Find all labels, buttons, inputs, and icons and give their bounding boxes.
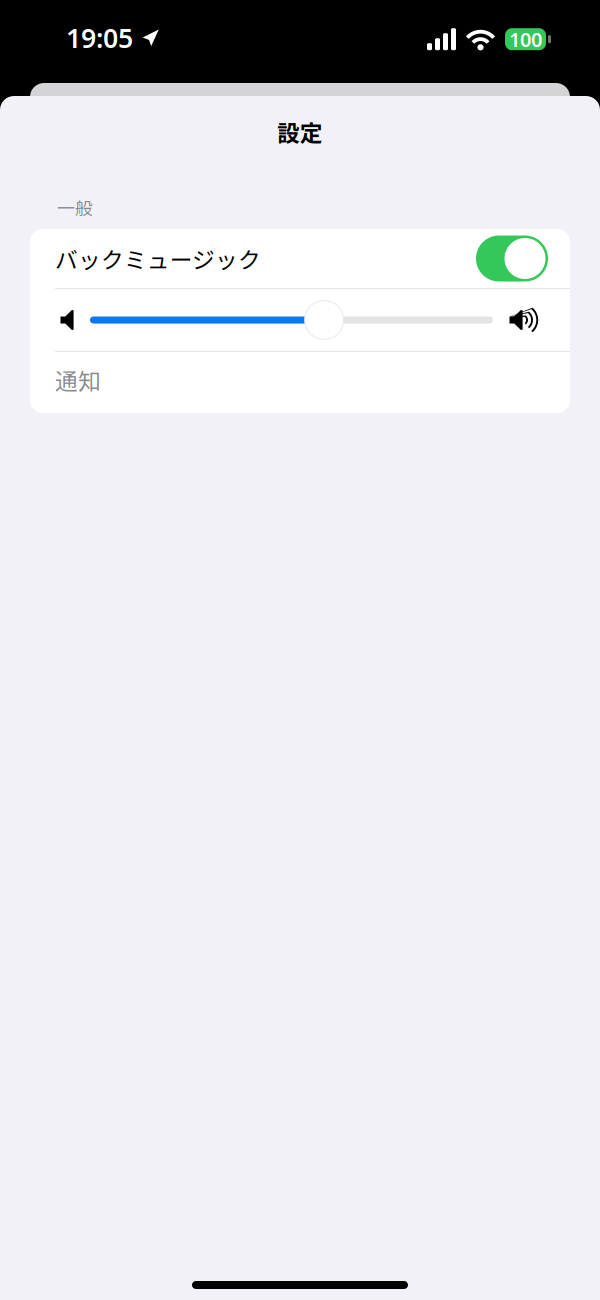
button[interactable]: 音量を上げる [509,309,539,330]
button[interactable]: 音量 [90,300,493,340]
staticText: 19:05 [66,20,133,55]
staticText: 通知 [55,363,101,396]
button[interactable]: 音量を下げる [60,309,74,330]
staticText: バックミュージック [55,242,261,275]
button[interactable]: 通知 [30,352,570,413]
staticText: 100 [509,26,542,52]
button[interactable]: バックミュージック [30,229,570,288]
staticText: 一般 [57,194,93,220]
staticText: 設定 [277,115,323,148]
